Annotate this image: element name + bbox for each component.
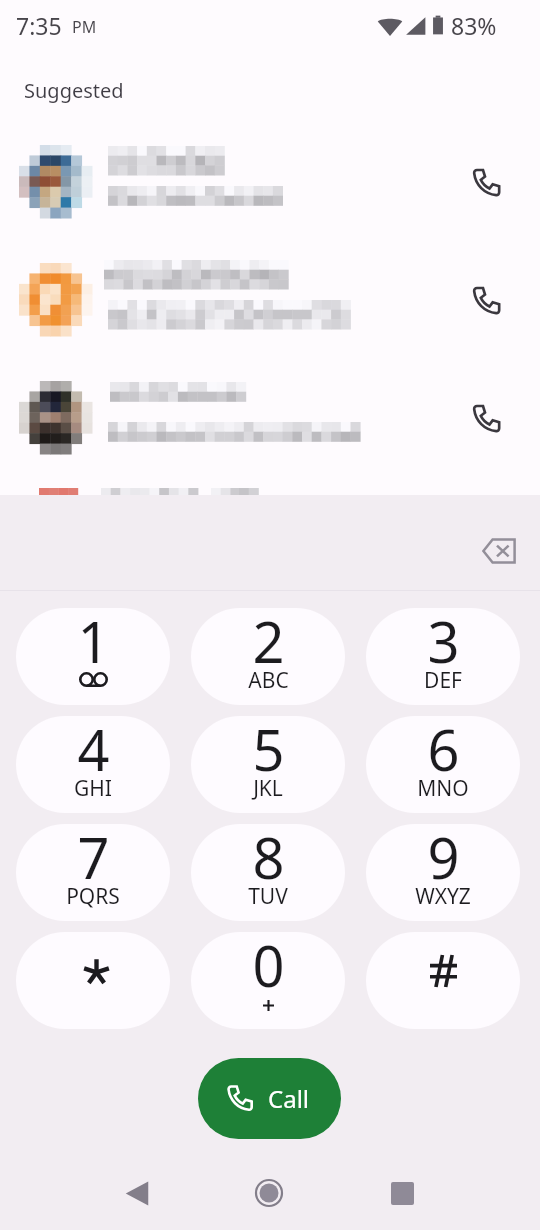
button[interactable]: 0 — [191, 932, 345, 1029]
staticText: 5 — [252, 716, 285, 787]
staticText: ABC — [248, 666, 289, 695]
staticText: GHI — [74, 774, 112, 803]
button[interactable]: 9 — [366, 824, 520, 921]
button[interactable]: 6 — [366, 716, 520, 813]
button[interactable]: Call — [0, 128, 540, 244]
staticText: JKL — [253, 774, 283, 803]
staticText: 9 — [427, 824, 460, 895]
staticText: 7:35 — [16, 10, 62, 41]
button[interactable] — [16, 932, 170, 1029]
staticText: DEF — [424, 666, 462, 695]
button[interactable]: Home — [245, 1169, 293, 1217]
button[interactable]: Call — [0, 246, 540, 362]
staticText: 0 — [252, 932, 285, 1003]
staticText: 4 — [77, 716, 110, 787]
staticText: 1 — [77, 608, 110, 679]
button[interactable]: Backspace — [465, 521, 533, 589]
button[interactable]: 2 — [191, 608, 345, 705]
staticText: WXYZ — [415, 882, 471, 911]
staticText: TUV — [248, 882, 288, 911]
button[interactable]: 1 — [16, 608, 170, 705]
button[interactable]: Call — [0, 364, 540, 480]
staticText: 83% — [451, 10, 497, 41]
button[interactable]: 5 — [191, 716, 345, 813]
staticText: 7 — [77, 824, 110, 895]
button[interactable]: Call — [456, 142, 516, 202]
button[interactable]: Recent apps — [378, 1169, 426, 1217]
button[interactable]: Call — [198, 1058, 341, 1139]
staticText: 2 — [252, 608, 285, 679]
button[interactable]: Back — [113, 1169, 161, 1217]
staticText: PM — [72, 16, 97, 38]
button[interactable] — [366, 932, 520, 1029]
staticText: MNO — [417, 774, 469, 803]
button[interactable]: Call — [456, 378, 516, 438]
staticText: PQRS — [66, 882, 120, 911]
staticText: 3 — [427, 608, 460, 679]
staticText: 8 — [252, 824, 285, 895]
button[interactable]: 3 — [366, 608, 520, 705]
button[interactable]: 7 — [16, 824, 170, 921]
staticText: 6 — [427, 716, 460, 787]
staticText: Call — [268, 1082, 310, 1115]
staticText: Suggested — [24, 77, 124, 104]
button[interactable]: 8 — [191, 824, 345, 921]
button[interactable]: Call — [456, 260, 516, 320]
button[interactable]: 4 — [16, 716, 170, 813]
